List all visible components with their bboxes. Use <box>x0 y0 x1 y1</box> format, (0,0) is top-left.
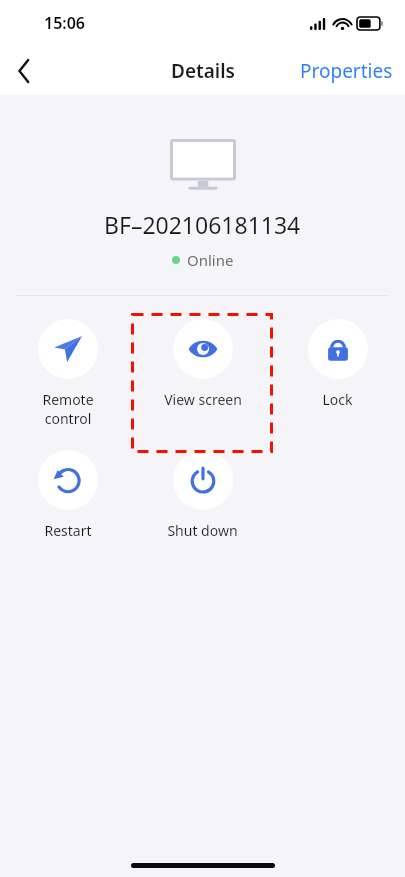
button[interactable]: Remote control <box>0 313 135 434</box>
button[interactable]: Shut down <box>135 444 270 546</box>
staticText: Shut down <box>167 521 238 540</box>
staticText: View screen <box>164 390 242 409</box>
staticText: Restart <box>44 521 92 540</box>
button[interactable]: View screen <box>135 313 270 415</box>
button[interactable]: Back <box>0 47 48 95</box>
button[interactable]: Lock <box>270 313 405 415</box>
staticText: BF–202106181134 <box>104 209 301 240</box>
staticText: Lock <box>322 390 353 409</box>
staticText: Details <box>171 58 235 84</box>
button[interactable]: Restart <box>0 444 135 546</box>
staticText: Online <box>187 250 234 270</box>
staticText: Remote control <box>42 390 94 428</box>
staticText: 15:06 <box>44 12 86 34</box>
button[interactable]: Properties <box>288 50 405 92</box>
staticText: Properties <box>300 58 393 84</box>
